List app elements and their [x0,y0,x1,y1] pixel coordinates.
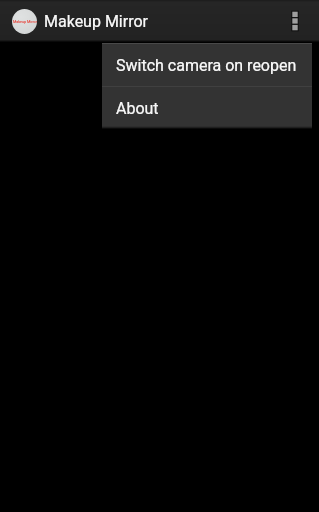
staticText: Makeup Mirror [13,20,37,24]
staticText: Switch camera on reopen [116,56,297,75]
button[interactable]: More options [269,0,319,42]
button[interactable]: Switch camera on reopen [102,44,312,86]
staticText: Makeup Mirror [44,12,148,31]
button[interactable]: About [102,87,312,129]
staticText: About [116,99,159,118]
